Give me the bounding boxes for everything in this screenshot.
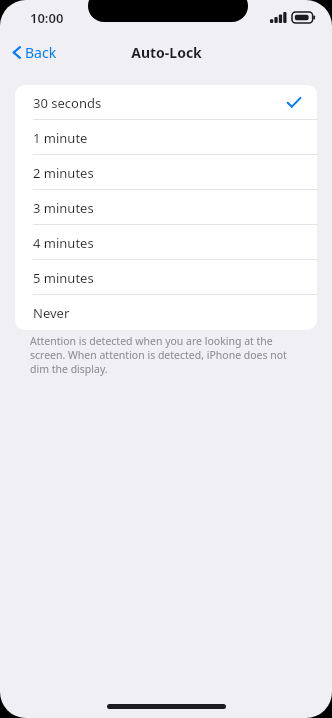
staticText: 1 minute (33, 129, 88, 147)
button[interactable]: Back (0, 39, 67, 66)
staticText: 2 minutes (33, 164, 94, 182)
staticText: Back (25, 43, 57, 62)
staticText: Auto-Lock (131, 43, 202, 62)
staticText: 4 minutes (33, 234, 94, 252)
button[interactable]: 2 minutes (15, 155, 317, 190)
button[interactable]: 5 minutes (15, 260, 317, 295)
staticText: 3 minutes (33, 199, 94, 217)
staticText: 5 minutes (33, 269, 94, 287)
button[interactable]: 1 minute (15, 120, 317, 155)
staticText: 10:00 (30, 9, 64, 27)
staticText: 30 seconds (33, 94, 102, 112)
button[interactable]: 3 minutes (15, 190, 317, 225)
button[interactable]: Never (15, 295, 317, 330)
button[interactable]: 30 seconds (15, 85, 317, 120)
button[interactable]: 4 minutes (15, 225, 317, 260)
staticText: Attention is detected when you are looki… (30, 334, 302, 376)
staticText: Never (33, 304, 70, 322)
